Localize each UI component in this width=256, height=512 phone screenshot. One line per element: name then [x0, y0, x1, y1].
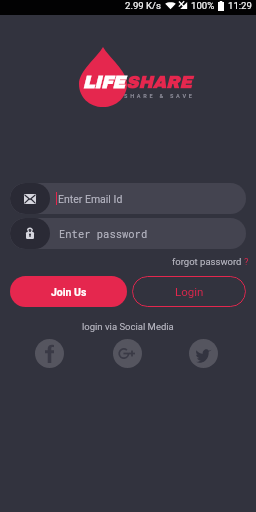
- staticText: 11:29: [228, 0, 252, 11]
- button[interactable]: Login: [132, 276, 246, 307]
- staticText: 2.99 K/s: [125, 0, 162, 11]
- button[interactable]: Twitter: [189, 339, 218, 368]
- button[interactable]: Google: [113, 339, 142, 368]
- staticText: forgot password: [172, 256, 244, 267]
- staticText: Join Us: [51, 286, 87, 298]
- staticText: 100%: [191, 0, 215, 11]
- staticText: login via Social Media: [82, 321, 174, 332]
- button[interactable]: Enter Email Id: [10, 183, 246, 214]
- staticText: LIFE: [83, 73, 126, 92]
- staticText: ?: [244, 256, 249, 267]
- staticText: Login: [175, 285, 204, 298]
- staticText: SHARE: [126, 73, 192, 92]
- button[interactable]: forgot password: [172, 256, 249, 267]
- button[interactable]: Join Us: [10, 276, 127, 307]
- staticText: Enter password: [59, 227, 148, 241]
- button[interactable]: Facebook: [35, 339, 64, 368]
- staticText: SHARE & SAVE: [124, 93, 195, 100]
- button[interactable]: Enter password: [10, 218, 246, 249]
- staticText: Enter Email Id: [58, 193, 123, 205]
